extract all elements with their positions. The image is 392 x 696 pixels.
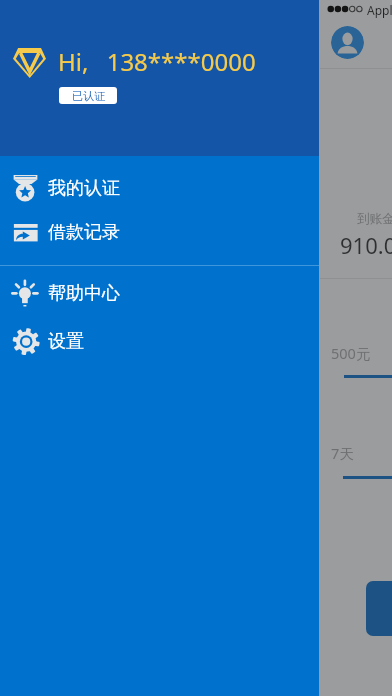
staticText: 到账金额 — [357, 211, 392, 227]
button[interactable]: 设置 — [0, 318, 319, 365]
staticText: 设置 — [48, 330, 84, 353]
staticText: 帮助中心 — [48, 282, 120, 305]
staticText: 借款记录 — [48, 221, 120, 244]
button[interactable]: 已认证 — [59, 87, 117, 104]
staticText: Apple — [367, 2, 392, 18]
staticText: 7天 — [331, 443, 354, 463]
staticText: Hi, 138****0000 — [58, 45, 256, 78]
staticText: 已认证 — [72, 89, 105, 103]
button[interactable]: Profile — [331, 26, 364, 59]
staticText: 910.00 — [340, 230, 392, 260]
button[interactable]: 帮助中心 — [0, 270, 319, 317]
button[interactable]: 我的认证 — [0, 165, 319, 211]
button[interactable]: Borrow now — [366, 581, 392, 636]
staticText: 500元 — [331, 343, 371, 363]
staticText: 我的认证 — [48, 177, 120, 200]
button[interactable]: 借款记录 — [0, 210, 319, 255]
